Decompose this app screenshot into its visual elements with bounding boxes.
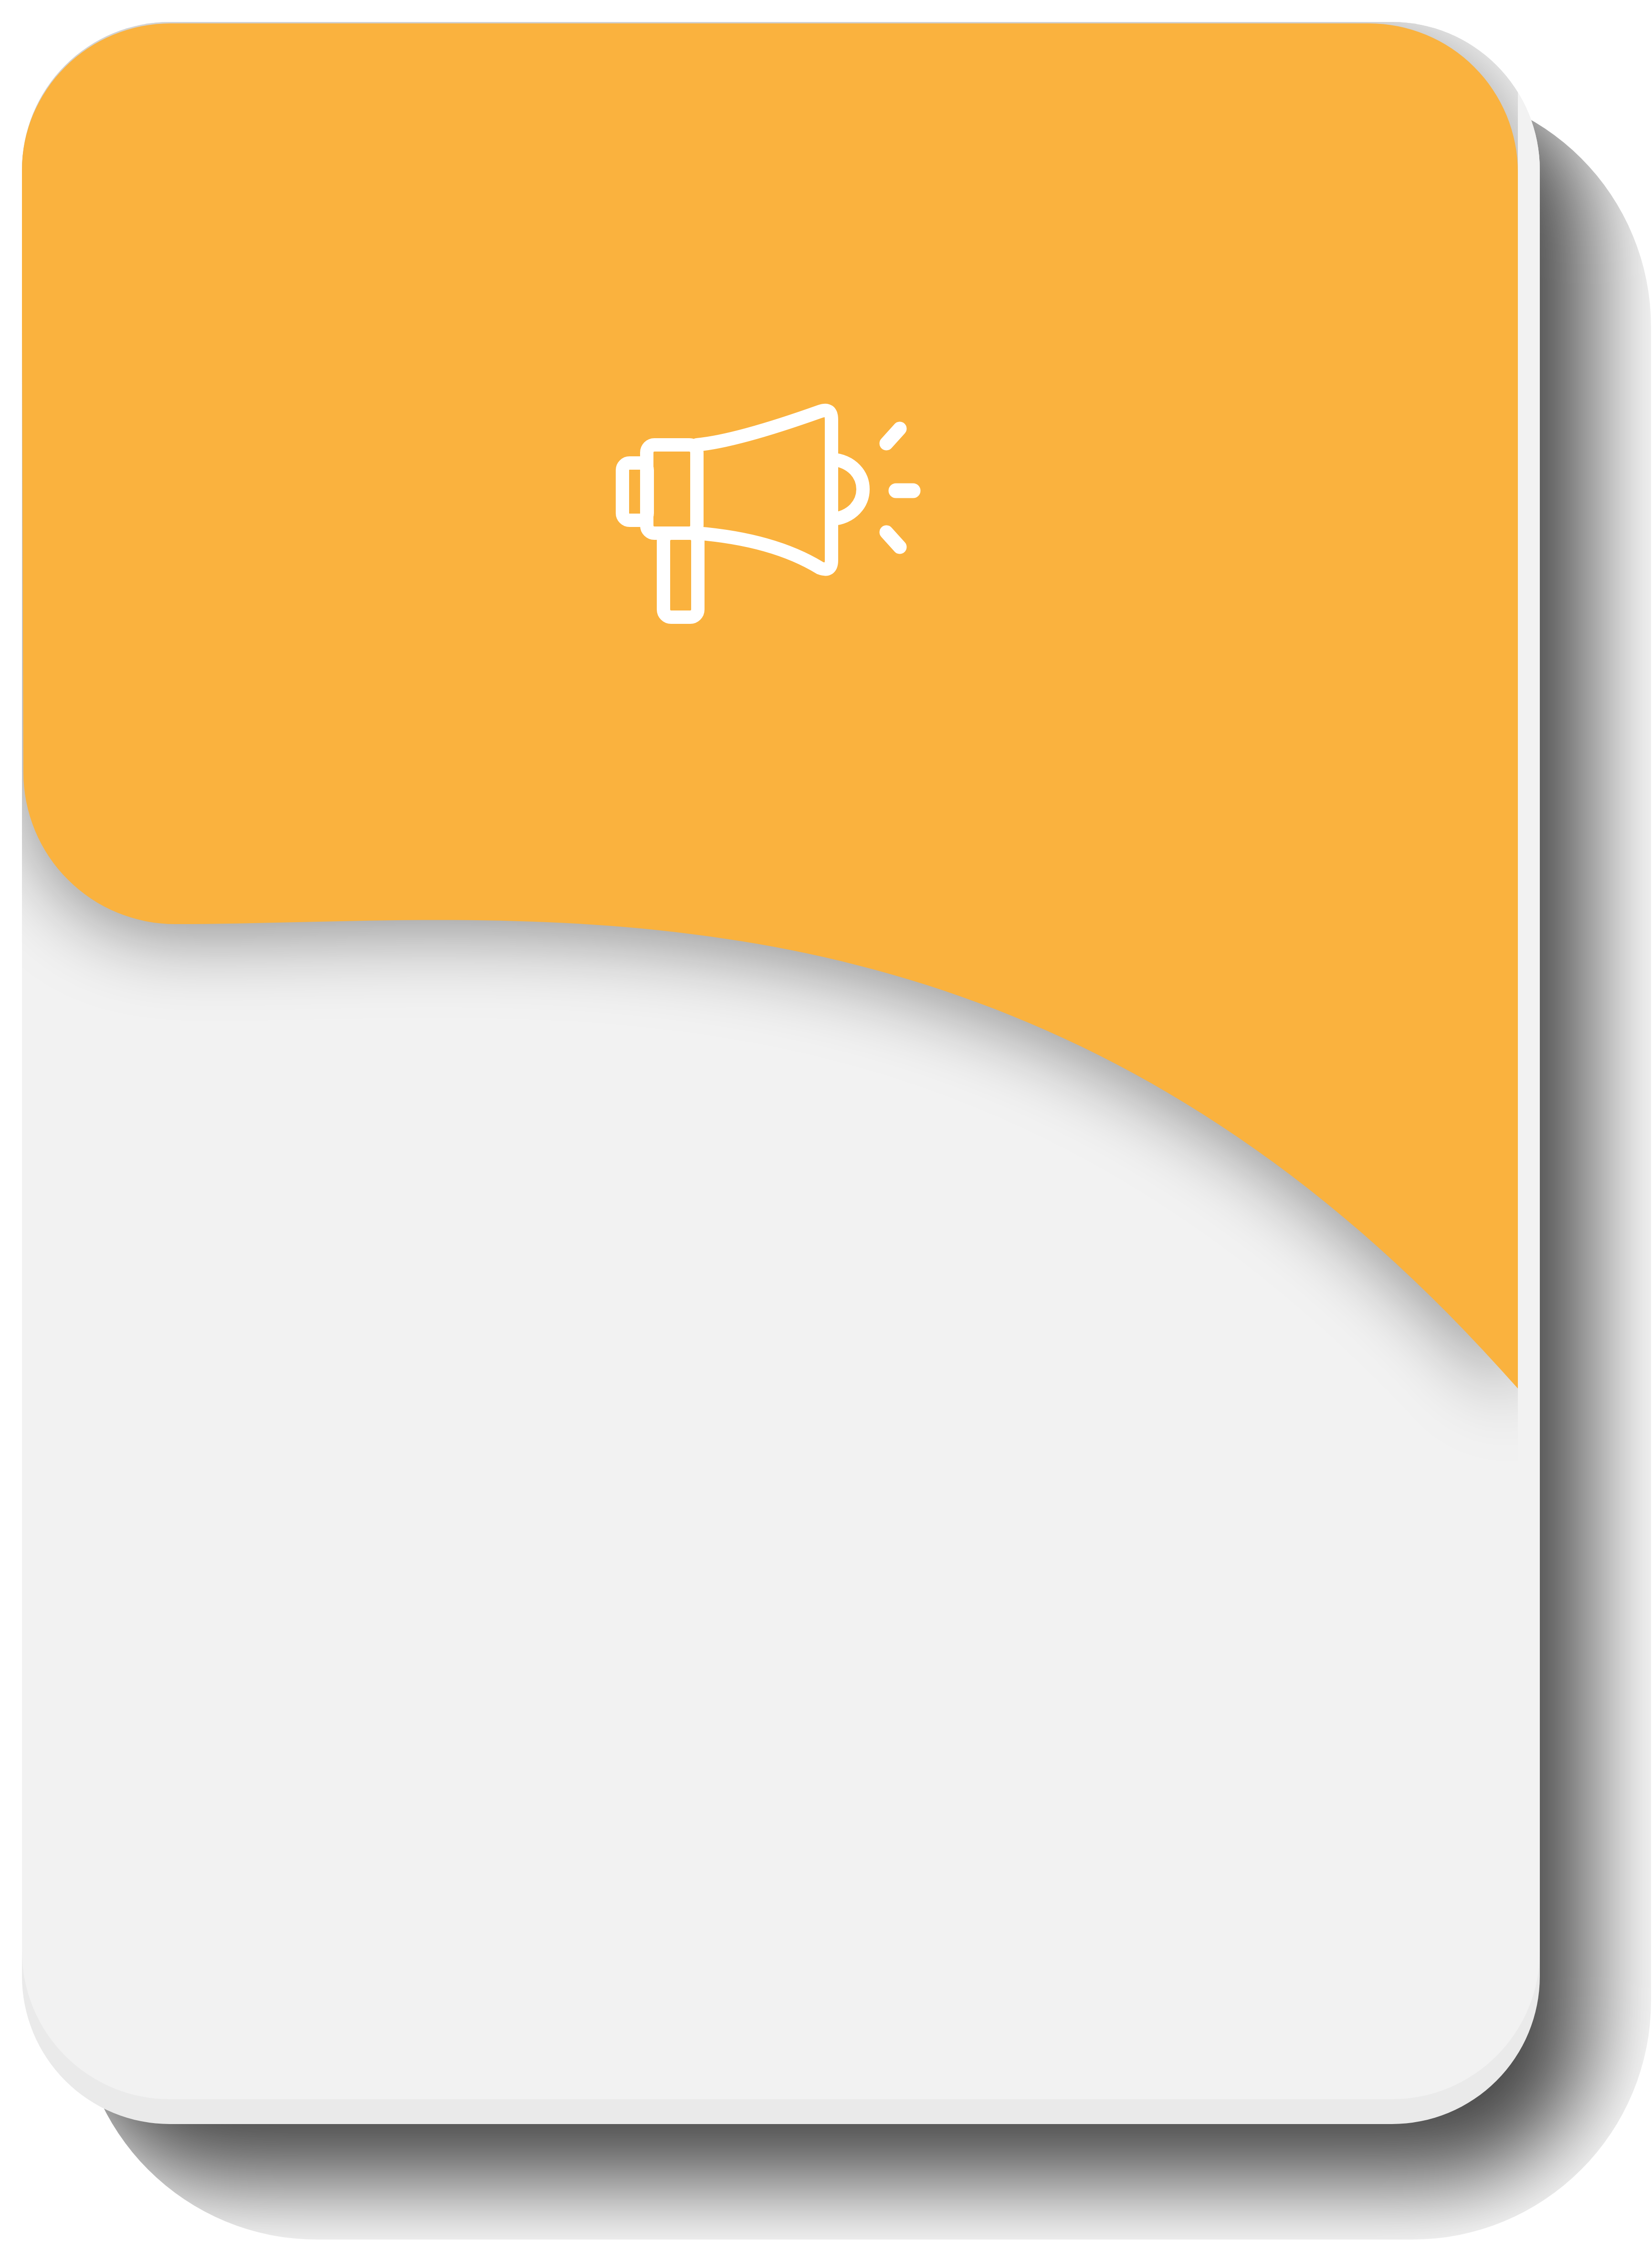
button[interactable]: Announcement card: [22, 22, 1540, 2124]
